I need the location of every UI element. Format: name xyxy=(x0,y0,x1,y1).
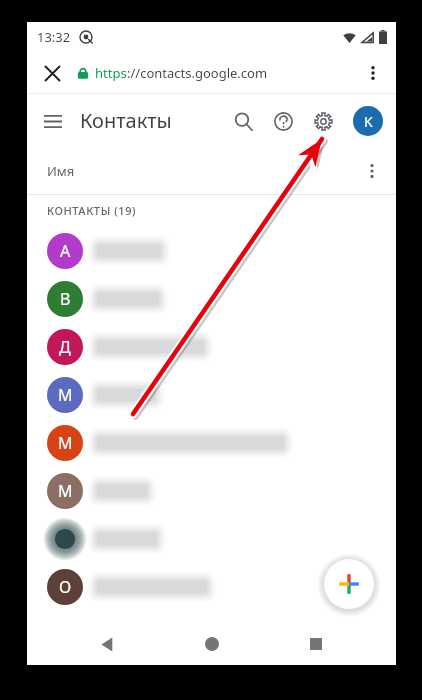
staticText: K xyxy=(364,112,373,131)
staticText: Контакты xyxy=(80,107,172,134)
button[interactable]: Account xyxy=(353,106,383,136)
staticText: Д xyxy=(59,336,71,358)
button[interactable]: В xyxy=(27,275,396,323)
staticText: 13:32 xyxy=(37,28,71,46)
staticText: О xyxy=(59,576,72,598)
button[interactable]: О xyxy=(27,563,396,611)
button[interactable]: Settings xyxy=(305,103,341,139)
button[interactable]: Create contact xyxy=(321,556,377,612)
button[interactable]: Home xyxy=(188,623,236,665)
staticText: https xyxy=(95,64,127,82)
staticText: КОНТАКТЫ (19) xyxy=(47,203,137,218)
button[interactable] xyxy=(27,515,396,563)
button[interactable]: Recent apps xyxy=(292,623,340,665)
staticText: Имя xyxy=(47,162,75,180)
button[interactable]: А xyxy=(27,227,396,275)
staticText: М xyxy=(58,432,73,454)
button[interactable]: М xyxy=(27,419,396,467)
button[interactable]: М xyxy=(27,371,396,419)
staticText: ://contacts.google.com xyxy=(127,64,268,82)
staticText: В xyxy=(60,288,71,310)
staticText: А xyxy=(60,240,71,262)
button[interactable]: М xyxy=(27,467,396,515)
staticText: М xyxy=(58,384,73,406)
button[interactable]: Close xyxy=(35,56,69,90)
button[interactable]: Search xyxy=(225,103,261,139)
button[interactable]: Д xyxy=(27,323,396,371)
staticText: М xyxy=(58,480,73,502)
button[interactable]: Sort options xyxy=(355,154,389,188)
button[interactable]: Menu xyxy=(33,101,73,141)
button[interactable]: Имя xyxy=(27,147,396,195)
button[interactable]: Help xyxy=(265,103,301,139)
button[interactable]: Back xyxy=(83,623,131,665)
button[interactable]: More options xyxy=(356,56,390,90)
